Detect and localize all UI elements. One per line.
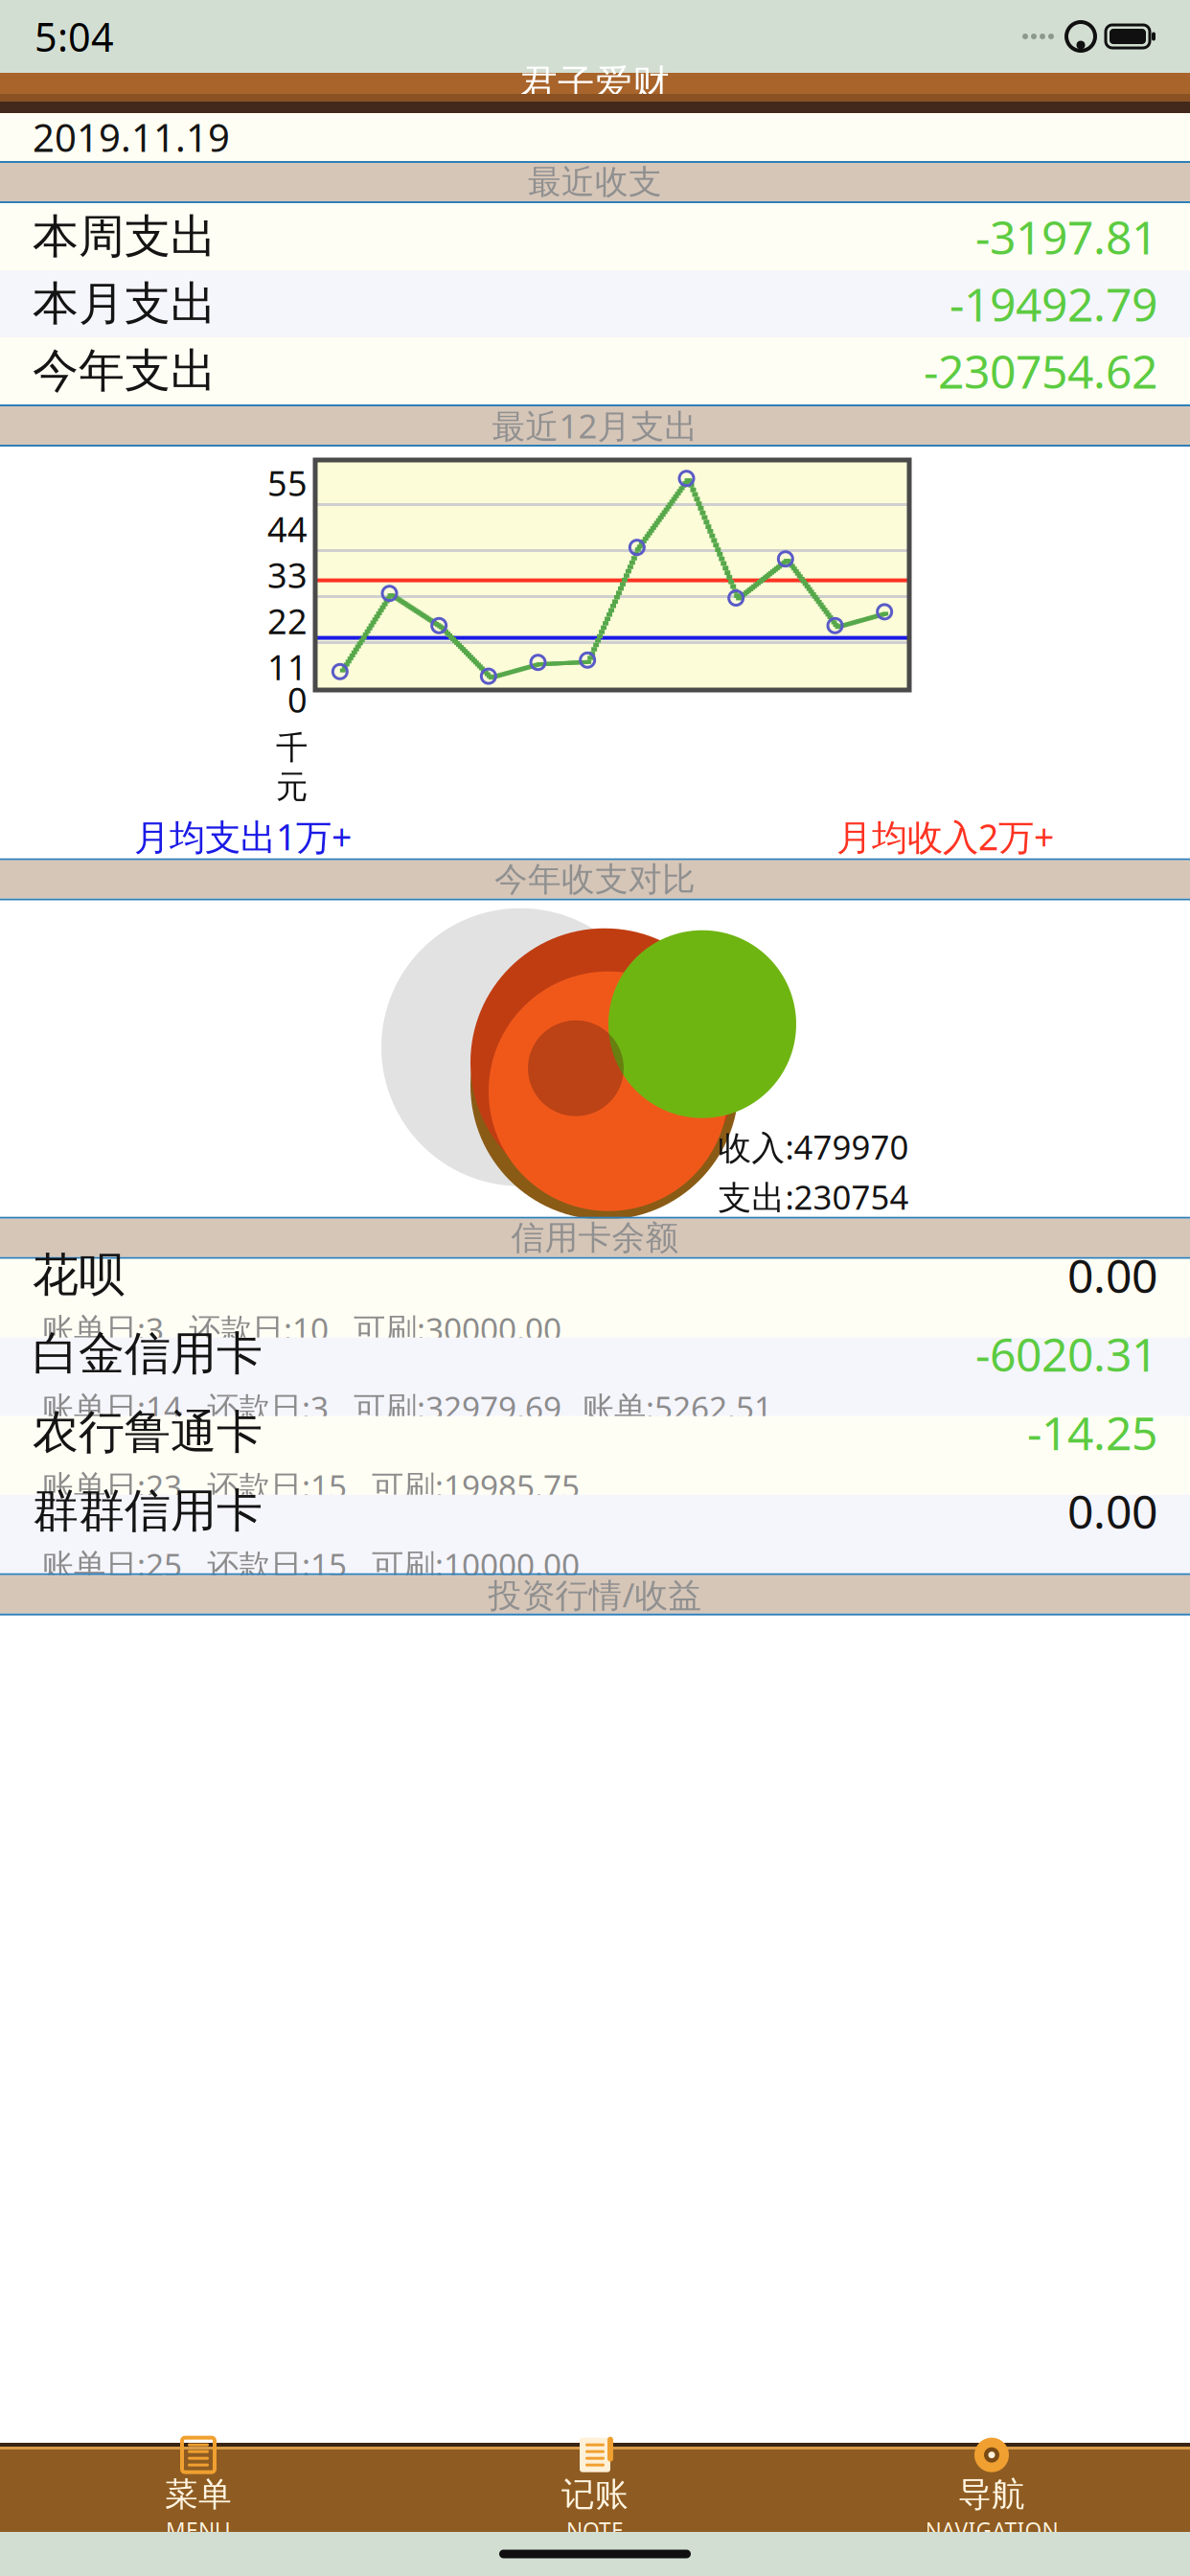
staticText: 千元 <box>276 728 308 807</box>
button[interactable]: Menu <box>0 2449 397 2532</box>
staticText: MENU <box>166 2516 231 2545</box>
button[interactable]: 今年支出 <box>0 337 1190 404</box>
staticText: 收入:479970 <box>718 1125 909 1169</box>
staticText: 11 <box>267 644 308 690</box>
button[interactable]: 花呗 <box>0 1259 1190 1338</box>
staticText: 账单日:25 <box>42 1543 182 1586</box>
staticText: 账单:5262.51 <box>583 1386 772 1429</box>
staticText: 最近收支 <box>528 162 662 202</box>
button[interactable]: 本月支出 <box>0 270 1190 337</box>
staticText: 还款日:15 <box>207 1465 347 1507</box>
staticText: 0.00 <box>1067 1480 1157 1541</box>
staticText: 最近12月支出 <box>492 403 698 448</box>
staticText: 月均支出1万+ <box>134 813 352 860</box>
staticText: NOTE <box>566 2516 624 2545</box>
staticText: 投资行情/收益 <box>488 1572 702 1616</box>
staticText: 账单日:23 <box>42 1465 182 1507</box>
staticText: 今年支出 <box>33 343 217 399</box>
staticText: 55 <box>267 460 308 506</box>
staticText: 支出:230754 <box>718 1175 909 1219</box>
staticText: 记账 <box>561 2474 629 2515</box>
staticText: 菜单 <box>165 2474 232 2515</box>
staticText: 本月支出 <box>33 276 217 332</box>
staticText: 33 <box>267 552 308 598</box>
button[interactable]: 群群信用卡 <box>0 1495 1190 1573</box>
staticText: 月均收入2万+ <box>836 813 1054 860</box>
button[interactable]: 白金信用卡 <box>0 1338 1190 1416</box>
staticText: 账单日:14 <box>42 1386 182 1429</box>
staticText: 还款日:3 <box>207 1386 329 1429</box>
button[interactable]: Note <box>397 2449 793 2532</box>
staticText: 5:04 <box>34 10 114 63</box>
staticText: 可刷:30000.00 <box>354 1308 561 1350</box>
button[interactable]: 本周支出 <box>0 203 1190 270</box>
staticText: -230754.62 <box>924 340 1157 401</box>
button[interactable]: 农行鲁通卡 <box>0 1416 1190 1495</box>
staticText: NAVIGATION <box>925 2516 1058 2545</box>
staticText: 账单日:3 <box>42 1308 164 1350</box>
button[interactable]: Navigation <box>793 2449 1190 2532</box>
staticText: 可刷:19985.75 <box>372 1465 580 1507</box>
staticText: 农行鲁通卡 <box>33 1404 263 1461</box>
staticText: 0.00 <box>1067 1245 1157 1306</box>
staticText: 群群信用卡 <box>33 1483 263 1539</box>
staticText: 信用卡余额 <box>511 1217 679 1258</box>
staticText: -19492.79 <box>950 273 1157 334</box>
staticText: 2019.11.19 <box>33 112 230 162</box>
staticText: 白金信用卡 <box>33 1325 263 1382</box>
staticText: 22 <box>267 598 308 644</box>
staticText: 还款日:10 <box>189 1308 329 1350</box>
staticText: -6020.31 <box>975 1323 1157 1384</box>
staticText: -14.25 <box>1027 1402 1157 1463</box>
staticText: 还款日:15 <box>207 1543 347 1586</box>
staticText: 今年收支对比 <box>494 859 696 900</box>
staticText: 可刷:10000.00 <box>372 1543 580 1586</box>
staticText: 君子爱财 <box>520 61 670 106</box>
staticText: 44 <box>267 506 308 552</box>
staticText: 本周支出 <box>33 208 217 265</box>
staticText: 可刷:32979.69 <box>354 1386 561 1429</box>
staticText: 花呗 <box>33 1247 125 1303</box>
staticText: -3197.81 <box>975 206 1157 267</box>
staticText: 0 <box>287 677 308 722</box>
staticText: 导航 <box>958 2474 1025 2515</box>
